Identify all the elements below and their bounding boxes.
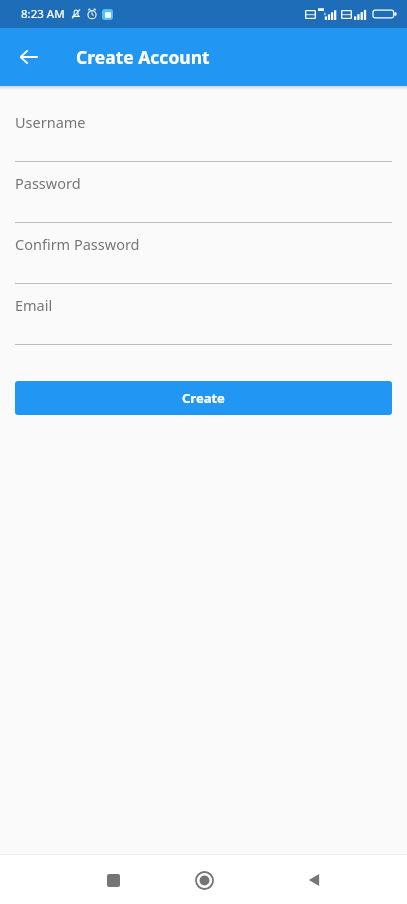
staticText: Create Account [76,45,210,69]
button[interactable]: Recent apps [92,859,134,901]
button[interactable]: Confirm Password [15,234,392,295]
button[interactable]: Password [15,173,392,234]
button[interactable]: Back [12,40,46,74]
button[interactable]: Home [183,859,225,901]
staticText: Password [15,173,81,193]
button[interactable]: Back [293,859,335,901]
button[interactable]: Username [15,112,392,173]
staticText: 8:23 AM [21,6,65,22]
button[interactable]: Email [15,295,392,356]
staticText: Username [15,112,86,132]
staticText: Email [15,295,53,315]
staticText: Create [182,389,225,407]
button[interactable]: Create [15,381,392,415]
staticText: Confirm Password [15,234,140,254]
